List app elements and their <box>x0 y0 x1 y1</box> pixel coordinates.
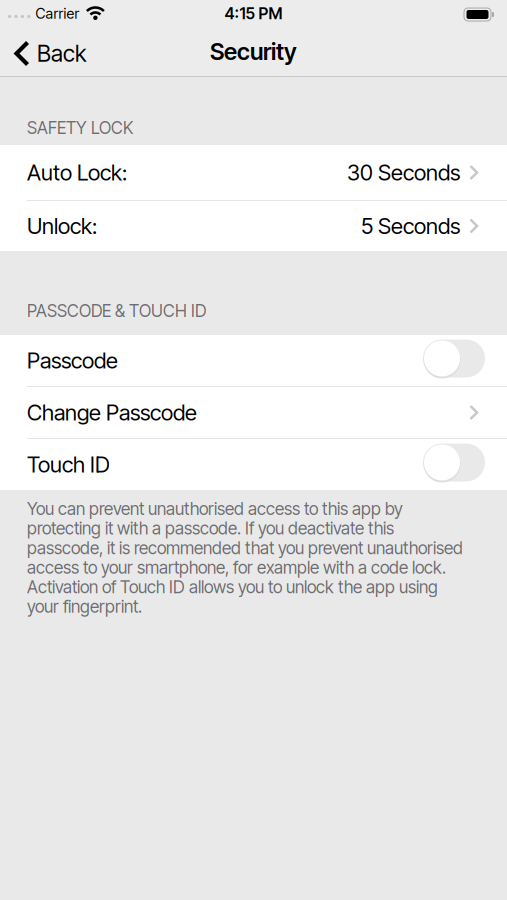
staticText: 30 Seconds <box>347 159 460 186</box>
staticText: Unlock: <box>27 213 97 239</box>
button[interactable]: Passcode <box>423 341 485 379</box>
staticText: Auto Lock: <box>27 159 127 186</box>
button[interactable]: Touch ID <box>423 445 485 483</box>
staticText: 5 Seconds <box>361 213 460 239</box>
staticText: 4:15 PM <box>224 4 282 23</box>
staticText: Change Passcode <box>27 399 197 426</box>
staticText: PASSCODE & TOUCH ID <box>27 300 206 321</box>
staticText: Passcode <box>27 347 118 374</box>
button[interactable]: Auto Lock: <box>0 145 507 200</box>
staticText: You can prevent unauthorised access to t… <box>27 499 463 616</box>
staticText: SAFETY LOCK <box>27 117 133 138</box>
button[interactable]: Back <box>0 38 86 65</box>
staticText: Carrier <box>35 5 79 22</box>
staticText: Back <box>37 40 86 67</box>
staticText: Security <box>210 37 297 66</box>
button[interactable]: Unlock: <box>0 201 507 251</box>
staticText: Touch ID <box>27 451 110 478</box>
button[interactable]: Change Passcode <box>0 387 507 438</box>
